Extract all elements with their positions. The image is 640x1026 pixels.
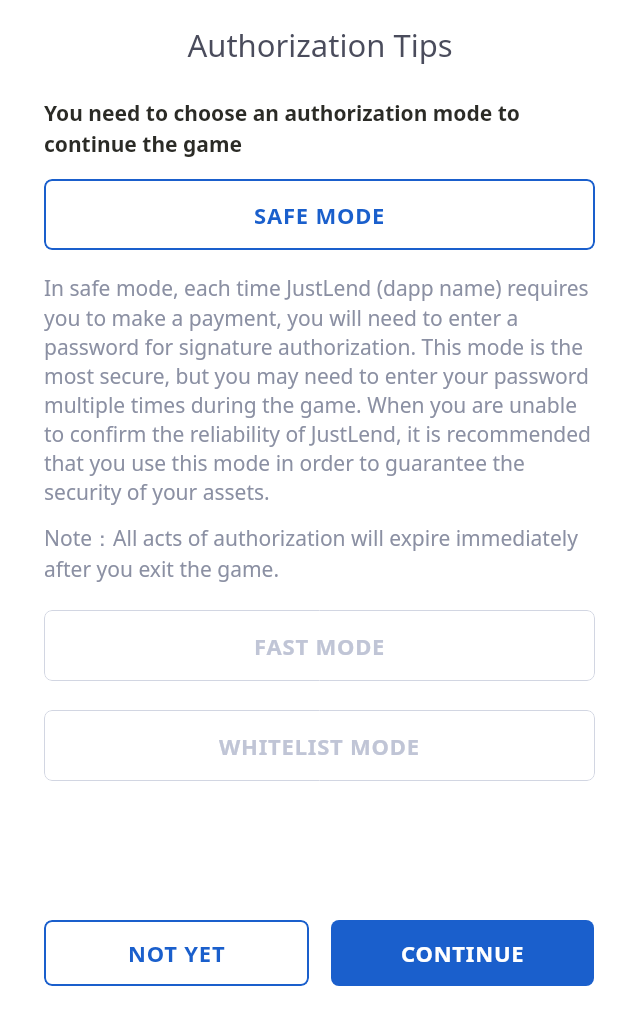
staticText: In safe mode, each time JustLend (dapp n…	[44, 274, 595, 506]
staticText: NOT YET	[128, 938, 226, 968]
button[interactable]: FAST MODE	[44, 610, 595, 681]
button[interactable]: WHITELIST MODE	[44, 710, 595, 781]
staticText: WHITELIST MODE	[219, 731, 420, 761]
staticText: SAFE MODE	[254, 200, 386, 230]
button[interactable]: SAFE MODE	[44, 179, 595, 250]
staticText: Note：All acts of authorization will expi…	[44, 524, 595, 583]
button[interactable]: CONTINUE	[331, 920, 594, 986]
staticText: FAST MODE	[254, 631, 386, 661]
staticText: CONTINUE	[401, 938, 525, 968]
button[interactable]: NOT YET	[44, 920, 309, 986]
staticText: Authorization Tips	[0, 24, 640, 66]
staticText: You need to choose an authorization mode…	[44, 99, 595, 158]
